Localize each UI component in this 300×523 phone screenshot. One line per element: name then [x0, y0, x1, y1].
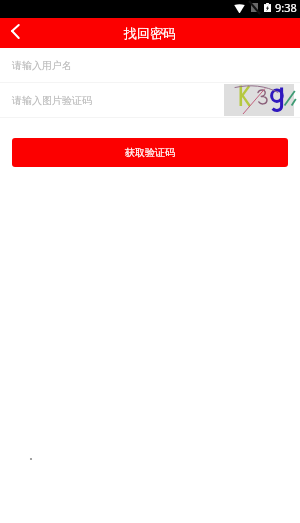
button[interactable]: Refresh captcha image — [224, 84, 294, 116]
staticText: 找回密码 — [124, 25, 176, 41]
button[interactable]: 请输入图片验证码 — [0, 83, 300, 117]
staticText: 9:38 — [275, 0, 297, 15]
staticText: 请输入图片验证码 — [12, 94, 92, 107]
button[interactable]: Back — [0, 18, 30, 48]
staticText: 获取验证码 — [125, 146, 175, 159]
button[interactable]: 请输入用户名 — [0, 48, 300, 82]
button[interactable]: 获取验证码 — [12, 138, 288, 167]
staticText: 请输入用户名 — [12, 59, 72, 72]
